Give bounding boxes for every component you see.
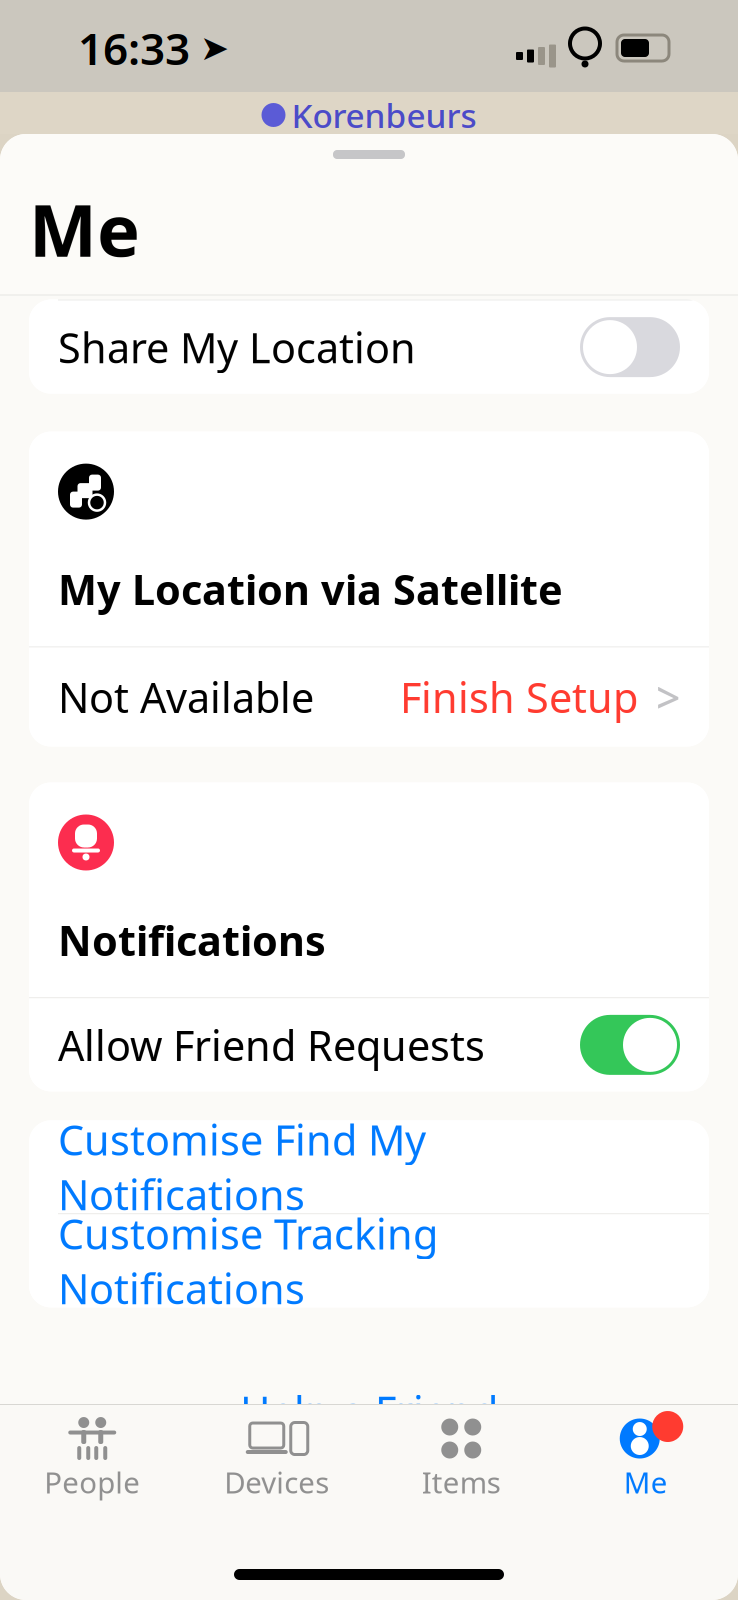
button[interactable]: People: [0, 1408, 184, 1507]
staticText: Share My Location: [58, 320, 416, 375]
button[interactable]: Allow Friend Requests: [29, 998, 709, 1091]
staticText: My Location via Satellite: [58, 562, 563, 616]
staticText: People: [44, 1462, 140, 1501]
staticText: Items: [422, 1462, 501, 1501]
staticText: 16:33: [78, 19, 190, 77]
staticText: Me: [29, 181, 140, 277]
button[interactable]: Me: [553, 1408, 738, 1507]
staticText: >: [656, 669, 680, 725]
button[interactable]: Devices: [184, 1408, 369, 1507]
staticText: devices from this iPhone.: [141, 1561, 596, 1600]
staticText: Devices: [224, 1462, 329, 1501]
button[interactable]: Customise Tracking Notifications: [29, 1214, 709, 1307]
staticText: Allow Friend Requests: [58, 1017, 485, 1072]
staticText: Not Available: [58, 670, 314, 724]
staticText: Notifications: [58, 912, 326, 967]
staticText: Help a Friend: [240, 1383, 498, 1438]
staticText: Me: [624, 1462, 668, 1501]
button[interactable]: Customise Find My Notifications: [29, 1120, 709, 1213]
staticText: Customise Tracking Notifications: [58, 1206, 438, 1316]
staticText: Open iCloud.com so others can sign in an…: [19, 1450, 718, 1553]
button[interactable]: Share My Location: [29, 301, 709, 394]
button[interactable]: Help a Friend: [228, 1379, 510, 1442]
button[interactable]: Not Available: [29, 647, 709, 746]
staticText: Customise Find My Notifications: [58, 1112, 426, 1222]
staticText: Korenbeurs: [291, 93, 476, 137]
button[interactable]: Items: [369, 1408, 553, 1507]
staticText: ➤: [200, 28, 229, 68]
staticText: Finish Setup: [400, 670, 638, 724]
